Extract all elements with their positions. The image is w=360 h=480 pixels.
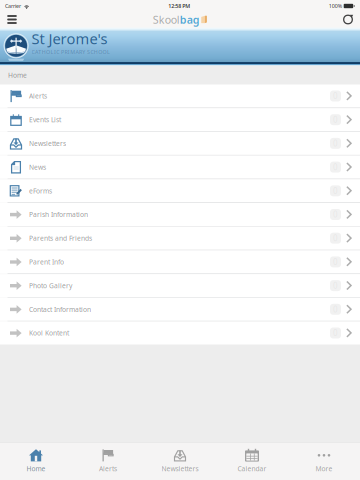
button[interactable]: Refresh [336,13,360,26]
staticText: Carrier [5,2,21,10]
staticText: Photo Gallery [29,281,72,290]
button[interactable]: Kool Kontent [0,321,360,344]
staticText: 0 [333,257,338,267]
button[interactable]: Photo Gallery [0,274,360,297]
button[interactable]: Calendar [216,442,288,480]
staticText: 0 [333,328,338,338]
staticText: 0 [333,162,338,172]
button[interactable]: Alerts [0,84,360,107]
button[interactable]: Parents and Friends [0,227,360,250]
staticText: 100% [329,2,342,10]
staticText: News [29,163,46,172]
button[interactable]: Newsletters [0,132,360,155]
staticText: More [315,464,332,473]
staticText: St Jerome's [32,29,108,48]
staticText: 0 [333,185,338,196]
staticText: CATHOLIC PRIMARY SCHOOL [32,48,110,55]
button[interactable]: More [288,442,360,480]
staticText: Alerts [29,92,47,100]
staticText: Calendar [237,464,266,473]
staticText: Newsletters [161,464,198,473]
staticText: Home [26,464,45,473]
button[interactable]: eForms [0,179,360,202]
staticText: Parent Info [29,257,64,266]
staticText: 0 [333,138,338,149]
staticText: Skool [153,12,180,27]
button[interactable]: Contact Information [0,298,360,321]
staticText: 0 [333,91,338,101]
staticText: 0 [333,114,338,125]
staticText: bag [180,12,200,27]
button[interactable]: Menu [0,13,24,26]
staticText: Home [8,71,27,80]
button[interactable]: Alerts [72,442,144,480]
staticText: 0 [333,280,338,291]
button[interactable]: Events List [0,108,360,131]
staticText: 0 [333,304,338,315]
staticText: Events List [29,115,61,124]
staticText: eForms [29,186,52,195]
button[interactable]: Parish Information [0,203,360,226]
button[interactable]: Newsletters [144,442,216,480]
staticText: Parents and Friends [29,234,92,243]
button[interactable]: News [0,156,360,179]
staticText: Kool Kontent [29,329,69,337]
staticText: 12:58 PM [168,2,190,10]
staticText: Newsletters [29,139,66,148]
staticText: 0 [333,233,338,243]
staticText: Parish Information [29,210,88,219]
staticText: Alerts [99,464,117,473]
button[interactable]: Parent Info [0,250,360,273]
staticText: Contact Information [29,305,91,314]
button[interactable]: Home [0,442,72,480]
